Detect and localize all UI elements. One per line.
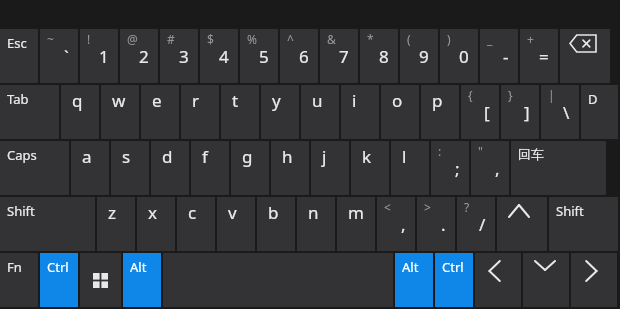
button[interactable]: Ctrl	[435, 253, 473, 307]
button[interactable]: Fn	[0, 253, 38, 307]
staticText: t	[232, 89, 239, 112]
button[interactable]: g	[231, 141, 269, 195]
button[interactable]: Alt	[395, 253, 433, 307]
button[interactable]: _	[480, 29, 518, 83]
staticText: %	[247, 31, 257, 47]
staticText: _	[487, 31, 493, 47]
button[interactable]: b	[257, 197, 295, 251]
staticText: (	[407, 31, 411, 47]
button[interactable]: Left arrow	[475, 253, 521, 307]
button[interactable]: c	[177, 197, 215, 251]
button[interactable]: x	[137, 197, 175, 251]
button[interactable]: a	[71, 141, 109, 195]
button[interactable]: k	[351, 141, 389, 195]
button[interactable]: D	[581, 85, 618, 139]
staticText: "	[478, 143, 483, 159]
button[interactable]: }	[501, 85, 539, 139]
staticText: p	[432, 89, 443, 112]
button[interactable]: Esc	[0, 29, 38, 83]
button[interactable]: y	[261, 85, 299, 139]
staticText: 5	[259, 45, 269, 68]
button[interactable]: Windows	[80, 253, 121, 307]
button[interactable]: ^	[280, 29, 318, 83]
button[interactable]: Tab	[0, 85, 59, 139]
button[interactable]: "	[471, 141, 509, 195]
button[interactable]: &	[320, 29, 358, 83]
button[interactable]: Caps	[0, 141, 69, 195]
button[interactable]: t	[221, 85, 259, 139]
button[interactable]: (	[400, 29, 438, 83]
staticText: !	[87, 31, 91, 47]
staticText: 4	[219, 45, 229, 68]
button[interactable]: <	[377, 197, 415, 251]
staticText: #	[167, 31, 175, 47]
button[interactable]: w	[101, 85, 139, 139]
staticText: [	[484, 101, 490, 124]
staticText: @	[127, 31, 138, 47]
button[interactable]: )	[440, 29, 478, 83]
staticText: s	[122, 145, 131, 168]
button[interactable]: j	[311, 141, 349, 195]
button[interactable]: >	[417, 197, 455, 251]
staticText: :	[438, 143, 442, 159]
button[interactable]: n	[297, 197, 335, 251]
staticText: z	[108, 201, 116, 224]
staticText: Ctrl	[47, 258, 69, 276]
button[interactable]: 回车	[511, 141, 606, 195]
staticText: *	[367, 31, 374, 47]
button[interactable]: ?	[457, 197, 495, 251]
staticText: ~	[47, 31, 54, 47]
staticText: v	[228, 201, 237, 224]
button[interactable]: @	[120, 29, 158, 83]
staticText: w	[112, 89, 126, 112]
button[interactable]: +	[520, 29, 558, 83]
button[interactable]: Down arrow	[523, 253, 569, 307]
button[interactable]: Backspace	[560, 29, 610, 83]
button[interactable]: q	[61, 85, 99, 139]
button[interactable]: !	[80, 29, 118, 83]
button[interactable]: Up arrow	[497, 197, 547, 251]
staticText: e	[152, 89, 162, 112]
button[interactable]: h	[271, 141, 309, 195]
button[interactable]: u	[301, 85, 339, 139]
button[interactable]: Alt	[123, 253, 161, 307]
staticText: 2	[139, 45, 149, 68]
staticText: i	[352, 89, 357, 112]
staticText: u	[312, 89, 323, 112]
button[interactable]: f	[191, 141, 229, 195]
button[interactable]: v	[217, 197, 255, 251]
button[interactable]: l	[391, 141, 429, 195]
button[interactable]: Ctrl	[40, 253, 78, 307]
button[interactable]: s	[111, 141, 149, 195]
button[interactable]: o	[381, 85, 419, 139]
button[interactable]: i	[341, 85, 379, 139]
button[interactable]: %	[240, 29, 278, 83]
staticText: `	[64, 45, 69, 68]
button[interactable]: p	[421, 85, 459, 139]
button[interactable]: z	[97, 197, 135, 251]
staticText: ^	[287, 31, 294, 47]
staticText: j	[322, 145, 327, 168]
button[interactable]: *	[360, 29, 398, 83]
staticText: >	[424, 199, 431, 215]
staticText: f	[202, 145, 208, 168]
button[interactable]: e	[141, 85, 179, 139]
staticText: l	[402, 145, 407, 168]
button[interactable]: m	[337, 197, 375, 251]
staticText: Esc	[7, 34, 27, 52]
button[interactable]: $	[200, 29, 238, 83]
button[interactable]: r	[181, 85, 219, 139]
button[interactable]: {	[461, 85, 499, 139]
button[interactable]: :	[431, 141, 469, 195]
staticText: Fn	[7, 258, 22, 276]
staticText: )	[447, 31, 451, 47]
button[interactable]: ~	[40, 29, 78, 83]
button[interactable]: Shift	[549, 197, 618, 251]
button[interactable]: d	[151, 141, 189, 195]
button[interactable]: Right arrow	[571, 253, 617, 307]
staticText: Shift	[7, 202, 35, 220]
button[interactable]: #	[160, 29, 198, 83]
button[interactable]: |	[541, 85, 579, 139]
button[interactable]: Shift	[0, 197, 95, 251]
